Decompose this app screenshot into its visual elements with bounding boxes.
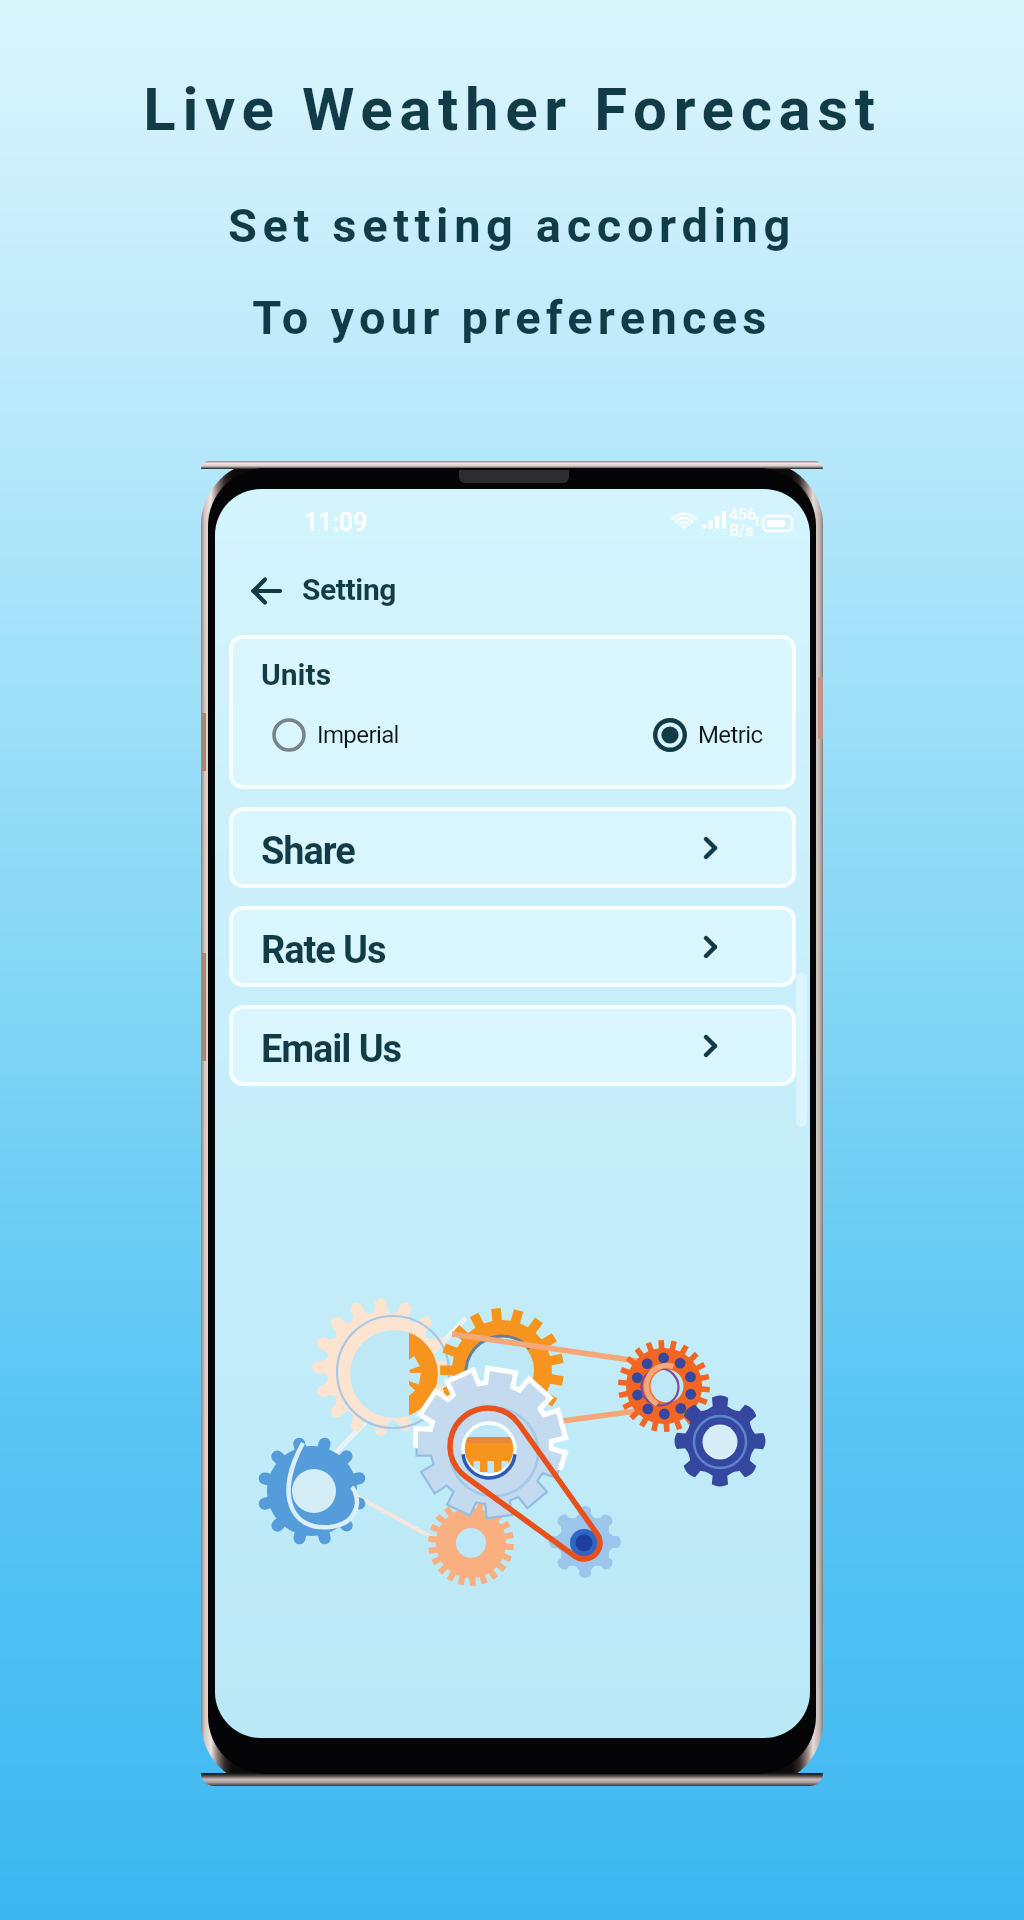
staticText: Share [261, 829, 355, 874]
staticText: Imperial [317, 721, 399, 749]
button[interactable]: Email Us [229, 1005, 796, 1086]
button[interactable]: Imperial [269, 715, 399, 755]
staticText: 456 [729, 505, 757, 524]
staticText: B/s [729, 521, 754, 540]
button[interactable]: Back [242, 567, 290, 614]
staticText: 11:09 [304, 508, 368, 537]
staticText: Setting [302, 572, 397, 607]
button[interactable]: Share [229, 807, 796, 888]
button[interactable]: Rate Us [229, 906, 796, 987]
staticText: Email Us [261, 1027, 402, 1072]
staticText: Live Weather Forecast [143, 74, 882, 144]
staticText: Metric [698, 721, 763, 749]
staticText: To your preferences [252, 290, 772, 345]
staticText: Rate Us [261, 928, 386, 973]
staticText: Set setting according [228, 198, 796, 253]
staticText: Units [261, 657, 332, 692]
button[interactable]: Metric [650, 715, 763, 755]
